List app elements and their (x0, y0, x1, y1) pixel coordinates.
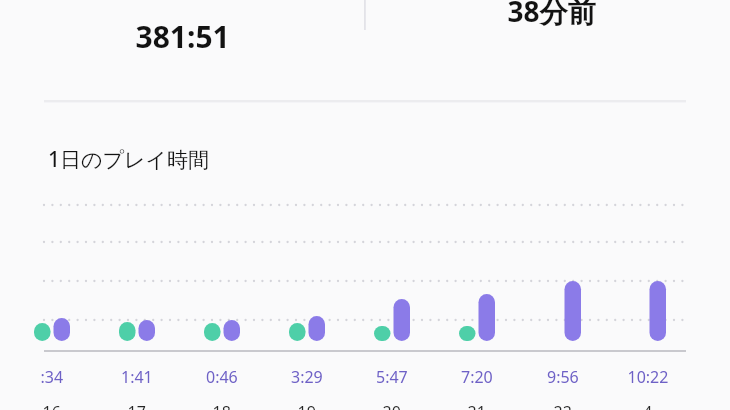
button[interactable]: 1日のプレイ時間グラフ (0, 0, 730, 410)
